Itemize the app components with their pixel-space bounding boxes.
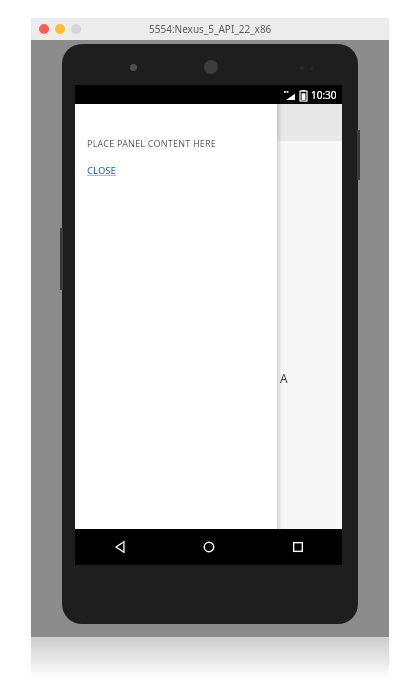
button[interactable]: Close window xyxy=(39,24,49,34)
staticText: 10:30 xyxy=(311,88,337,102)
button[interactable]: Zoom window xyxy=(71,24,81,34)
button[interactable]: Recent apps xyxy=(253,529,342,565)
button[interactable]: Back xyxy=(75,529,164,565)
button[interactable]: Minimize window xyxy=(55,24,65,34)
staticText: CLOSE xyxy=(87,164,116,177)
staticText: PLACE PANEL CONTENT HERE xyxy=(87,137,217,149)
staticText: A xyxy=(280,370,288,386)
staticText: 5554:Nexus_5_API_22_x86 xyxy=(149,22,272,36)
button[interactable]: Home xyxy=(164,529,253,565)
button[interactable]: CLOSE xyxy=(87,163,120,178)
